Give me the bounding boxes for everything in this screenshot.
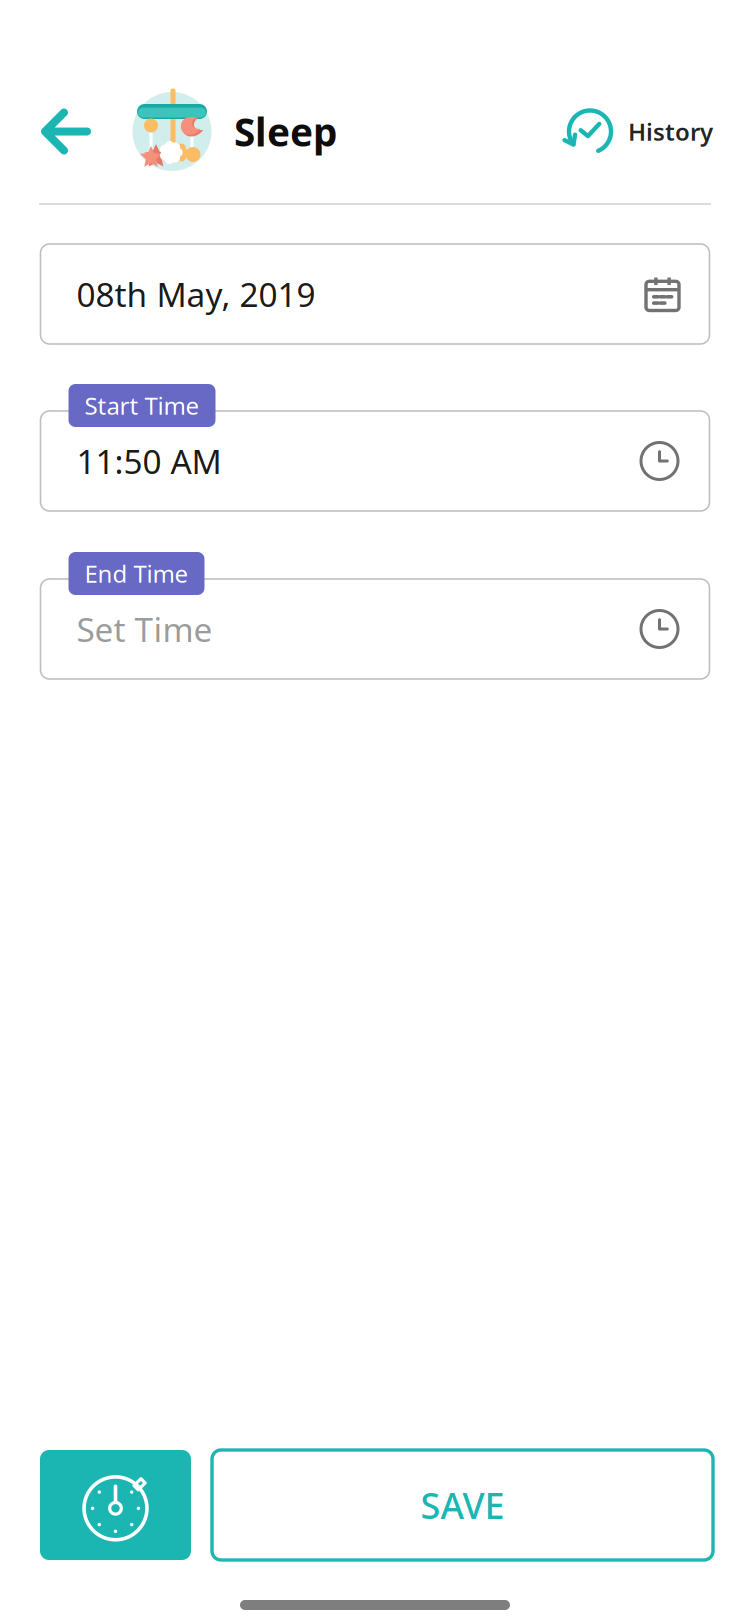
button[interactable]: 11:50 AM (40, 384, 709, 511)
staticText: End Time (84, 558, 188, 589)
staticText: SAVE (420, 1481, 504, 1529)
button[interactable]: Set Time (40, 552, 709, 679)
button[interactable]: 08th May, 2019 (40, 244, 709, 344)
staticText: Start Time (84, 390, 199, 421)
button[interactable]: Back (0, 86, 132, 176)
button[interactable]: SAVE (212, 1450, 713, 1560)
button[interactable]: Start timer (40, 1450, 191, 1560)
staticText: Set Time (76, 607, 212, 651)
staticText: History (628, 116, 713, 147)
button[interactable]: History (567, 86, 750, 176)
staticText: 11:50 AM (76, 439, 221, 483)
staticText: Sleep (234, 106, 337, 157)
staticText: 08th May, 2019 (76, 272, 315, 316)
